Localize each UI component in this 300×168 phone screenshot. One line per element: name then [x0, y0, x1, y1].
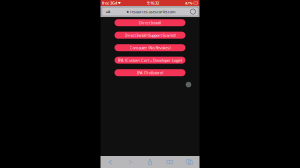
button[interactable]: Bookmarks: [160, 156, 180, 168]
button[interactable]: Direct Install (Support Scarlet): [114, 32, 185, 39]
button[interactable]: Tabs: [180, 156, 199, 168]
staticText: ᴀA: [106, 9, 111, 14]
staticText: 47%: [185, 0, 193, 6]
button[interactable]: Reload: [189, 8, 197, 15]
button[interactable]: Back: [100, 156, 120, 168]
button[interactable]: Direct Install: [114, 19, 185, 26]
staticText: 9:16:32: [147, 0, 159, 6]
button[interactable]: IPA (Trollstore): [114, 69, 185, 76]
staticText: Direct Install: [139, 20, 161, 25]
button[interactable]: IPA (Custom Cert + Developer Login): [114, 57, 185, 64]
staticText: Computer (No Revokes): [129, 45, 170, 50]
staticText: Direct Install (Support Scarlet): [124, 32, 175, 38]
staticText: free 3G4: [102, 0, 117, 6]
staticText: resources.usescarlet.com: [130, 9, 176, 14]
staticText: IPA (Trollstore): [137, 70, 163, 75]
button[interactable]: Computer (No Revokes): [114, 44, 185, 51]
button[interactable]: Page settings: [103, 8, 113, 15]
button[interactable]: Share: [140, 156, 160, 168]
staticText: IPA (Custom Cert + Developer Login): [118, 57, 182, 63]
